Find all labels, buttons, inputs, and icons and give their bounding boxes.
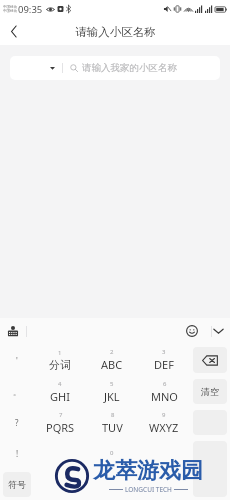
staticText: ! — [16, 448, 19, 459]
staticText: 2 — [110, 348, 114, 356]
button[interactable]: Key — [193, 441, 227, 497]
staticText: JKL — [104, 389, 120, 404]
staticText: 5 — [110, 380, 114, 388]
button[interactable]: 1 — [34, 344, 86, 376]
staticText: 9 — [162, 411, 166, 419]
staticText: LONGCUI TECH — [125, 485, 172, 494]
staticText: 请输入我家的小区名称 — [82, 62, 177, 74]
button[interactable]: ! — [0, 438, 34, 469]
staticText: 09:35 — [18, 3, 43, 16]
button[interactable]: Key — [193, 347, 227, 373]
staticText: 清空 — [201, 386, 219, 397]
staticText: 分词 — [49, 358, 71, 372]
staticText: 请输入小区名称 — [75, 25, 156, 39]
staticText: ABC — [101, 357, 123, 372]
staticText: 符号 — [8, 479, 26, 490]
staticText: ? — [15, 417, 19, 428]
button[interactable] — [34, 438, 86, 469]
staticText: 。 — [13, 387, 21, 397]
staticText: 0 — [110, 449, 114, 457]
button[interactable]: 2 — [86, 344, 138, 376]
button[interactable]: ? — [0, 407, 34, 438]
staticText: ' — [16, 355, 18, 366]
staticText: WXYZ — [149, 420, 179, 435]
button[interactable]: 0 — [86, 438, 138, 469]
button[interactable]: Keyboard settings — [6, 324, 20, 338]
staticText: GHI — [50, 389, 70, 404]
staticText: TUV — [102, 420, 123, 435]
staticText: 6 — [163, 380, 167, 388]
button[interactable]: Key — [193, 379, 227, 404]
staticText: 8 — [111, 411, 115, 419]
staticText: 龙萃游戏园 — [93, 457, 203, 485]
staticText: 中国移动 — [3, 9, 17, 13]
staticText: 中国移动 — [3, 5, 17, 9]
button[interactable]: 7 — [34, 407, 86, 438]
button[interactable]: 请输入我家的小区名称 — [10, 56, 220, 80]
staticText: 1 — [58, 349, 62, 357]
button[interactable] — [138, 438, 190, 469]
button[interactable]: 4 — [34, 376, 86, 407]
button[interactable]: 符号 — [3, 472, 31, 497]
staticText: 7 — [59, 411, 63, 419]
staticText: 3 — [162, 348, 166, 356]
staticText: PQRS — [46, 420, 75, 435]
button[interactable]: 6 — [138, 376, 190, 407]
button[interactable]: 8 — [86, 407, 138, 438]
button[interactable]: 9 — [138, 407, 190, 438]
button[interactable]: 5 — [86, 376, 138, 407]
button[interactable]: Hide keyboard — [210, 323, 226, 339]
button[interactable]: Emoji — [184, 323, 200, 339]
button[interactable]: 3 — [138, 344, 190, 376]
button[interactable]: Back — [0, 18, 28, 45]
staticText: 4 — [58, 380, 62, 388]
staticText: DEF — [154, 357, 174, 372]
staticText: MNO — [151, 389, 178, 404]
